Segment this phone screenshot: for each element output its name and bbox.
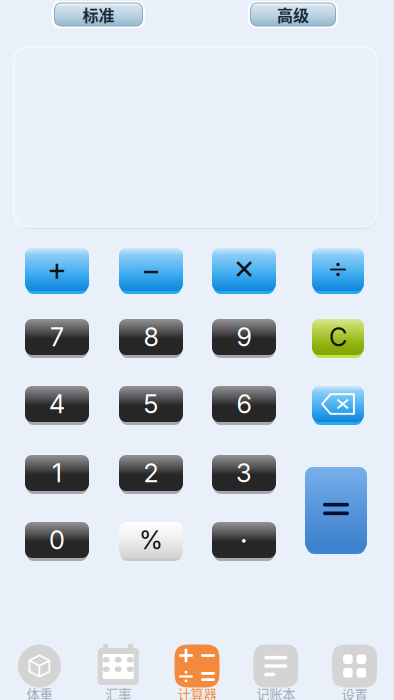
button[interactable]: Backspace	[312, 386, 364, 425]
staticText: 7	[50, 322, 64, 352]
button[interactable]: 6	[212, 386, 276, 425]
staticText: 2	[143, 458, 158, 488]
button[interactable]: ✕	[212, 248, 276, 294]
staticText: 3	[236, 458, 252, 488]
staticText: ✕	[233, 254, 255, 285]
staticText: 8	[143, 322, 158, 352]
button[interactable]: 7	[25, 319, 89, 358]
button[interactable]: 标准	[52, 1, 145, 28]
button[interactable]: 0	[25, 522, 89, 561]
staticText: 汇率	[105, 684, 131, 700]
staticText: 记账本	[256, 684, 295, 700]
button[interactable]: 体重	[0, 644, 79, 700]
staticText: −	[141, 251, 161, 288]
staticText: 体重	[26, 684, 52, 700]
staticText: 设置	[342, 684, 368, 700]
staticText: 高级	[277, 3, 309, 26]
staticText: 6	[236, 389, 251, 419]
button[interactable]: −	[119, 248, 183, 294]
button[interactable]: Equals	[305, 467, 367, 554]
button[interactable]: 高级	[248, 1, 338, 28]
staticText: +	[47, 251, 67, 288]
button[interactable]: 3	[212, 455, 276, 494]
button[interactable]: 设置	[315, 644, 394, 700]
staticText: 9	[236, 322, 251, 352]
button[interactable]: 2	[119, 455, 183, 494]
staticText: 5	[143, 389, 158, 419]
staticText: 0	[49, 525, 65, 555]
staticText: ·	[240, 522, 248, 558]
button[interactable]: ·	[212, 522, 276, 561]
button[interactable]: %	[119, 522, 183, 561]
button[interactable]: Divide	[312, 248, 364, 294]
button[interactable]: 汇率	[79, 644, 158, 700]
button[interactable]: +	[25, 248, 89, 294]
button[interactable]: 4	[25, 386, 89, 425]
button[interactable]: 5	[119, 386, 183, 425]
staticText: C	[329, 322, 347, 352]
staticText: 4	[49, 389, 65, 419]
button[interactable]: 计算器	[158, 644, 236, 700]
button[interactable]: 记账本	[236, 644, 315, 700]
staticText: 标准	[82, 3, 114, 26]
button[interactable]: 8	[119, 319, 183, 358]
button[interactable]: 9	[212, 319, 276, 358]
button[interactable]: C	[312, 319, 364, 358]
staticText: %	[139, 525, 163, 555]
button[interactable]: 1	[25, 455, 89, 494]
staticText: 计算器	[177, 684, 216, 700]
staticText: 1	[52, 458, 62, 488]
